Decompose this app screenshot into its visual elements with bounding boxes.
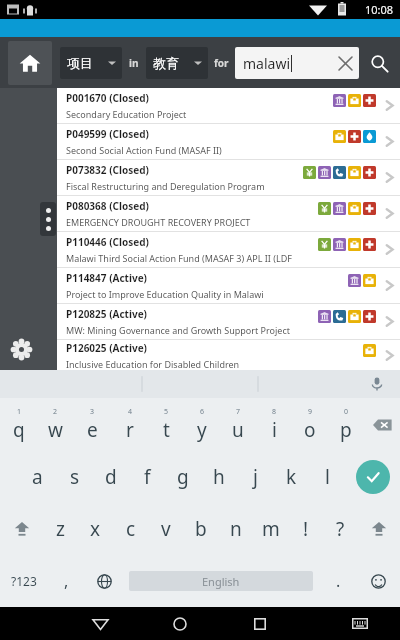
staticText: Malawi Third Social Action Fund (MASAF 3…	[66, 252, 318, 264]
button[interactable]: P001670 (Closed)	[57, 88, 400, 123]
staticText: j	[253, 464, 258, 490]
staticText: 5	[164, 407, 169, 417]
button[interactable]: v	[148, 503, 183, 555]
button[interactable]: m	[253, 503, 288, 555]
button[interactable]: P073832 (Closed)	[57, 160, 400, 195]
button[interactable]: h	[201, 451, 237, 503]
button[interactable]: d	[93, 451, 129, 503]
button[interactable]: Drag handle	[40, 202, 56, 236]
button[interactable]: 2	[37, 398, 74, 451]
staticText: r	[126, 417, 134, 443]
button[interactable]: 项目	[60, 47, 122, 79]
staticText: P080368 (Closed)	[66, 199, 149, 213]
staticText: English	[202, 574, 240, 589]
staticText: q	[13, 417, 25, 443]
staticText: Second Social Action Fund (MASAF II)	[66, 144, 222, 156]
staticText: 0	[344, 407, 349, 417]
button[interactable]: 0	[328, 398, 364, 451]
staticText: EMERGENCY DROUGHT RECOVERY PROJECT	[66, 216, 251, 228]
staticText: u	[232, 417, 244, 443]
button[interactable]: 4	[111, 398, 148, 451]
button[interactable]: b	[183, 503, 218, 555]
button[interactable]: 3	[74, 398, 111, 451]
button[interactable]: Search	[362, 46, 396, 80]
button[interactable]: .	[319, 555, 357, 607]
button[interactable]: Clear	[331, 49, 359, 77]
staticText: Project to Improve Education Quality in …	[66, 288, 264, 300]
staticText: g	[177, 464, 189, 490]
staticText: p	[340, 417, 352, 443]
button[interactable]: Language	[85, 555, 123, 607]
button[interactable]: 教育	[146, 47, 208, 79]
button[interactable]: l	[309, 451, 345, 503]
staticText: w	[48, 417, 63, 443]
button[interactable]: Enter	[356, 460, 390, 494]
button[interactable]: 6	[184, 398, 220, 451]
staticText: 4	[128, 407, 133, 417]
button[interactable]: 5	[148, 398, 184, 451]
button[interactable]: English	[129, 571, 313, 591]
staticText: ,	[64, 570, 69, 592]
staticText: in	[129, 56, 139, 70]
staticText: Fiscal Restructuring and Deregulation Pr…	[66, 180, 303, 192]
button[interactable]: P049599 (Closed)	[57, 124, 400, 159]
button[interactable]: c	[113, 503, 148, 555]
button[interactable]: Shift	[0, 503, 43, 555]
staticText: h	[213, 464, 225, 490]
staticText: b	[195, 516, 207, 542]
staticText: s	[70, 464, 80, 490]
staticText: 8	[272, 407, 277, 417]
staticText: 10:08	[365, 2, 394, 17]
staticText: !	[303, 516, 309, 542]
staticText: a	[32, 464, 43, 490]
button[interactable]: j	[237, 451, 273, 503]
button[interactable]: ?	[323, 503, 358, 555]
button[interactable]: x	[78, 503, 113, 555]
staticText: l	[325, 464, 330, 490]
button[interactable]: n	[218, 503, 253, 555]
button[interactable]: P110446 (Closed)	[57, 232, 400, 267]
button[interactable]: z	[43, 503, 78, 555]
staticText: y	[197, 417, 207, 443]
button[interactable]: Settings	[6, 334, 36, 364]
button[interactable]: Switch keyboard	[335, 607, 385, 640]
button[interactable]: Shift	[358, 503, 400, 555]
button[interactable]: P126025 (Active)	[57, 340, 400, 370]
button[interactable]: P120825 (Active)	[57, 304, 400, 339]
button[interactable]: ,	[47, 555, 85, 607]
staticText: t	[163, 417, 170, 443]
staticText: for	[214, 56, 229, 70]
button[interactable]: Recents	[235, 607, 285, 640]
staticText: P049599 (Closed)	[66, 127, 149, 141]
button[interactable]: 1	[0, 398, 37, 451]
button[interactable]: malawi	[235, 47, 359, 79]
button[interactable]: Voice input	[364, 371, 390, 397]
button[interactable]: 7	[220, 398, 256, 451]
staticText: MW: Mining Governance and Growth Support…	[66, 324, 290, 336]
button[interactable]: 8	[256, 398, 292, 451]
button[interactable]: f	[129, 451, 165, 503]
button[interactable]: Home	[155, 607, 205, 640]
button[interactable]: !	[288, 503, 323, 555]
button[interactable]: g	[165, 451, 201, 503]
staticText: P001670 (Closed)	[66, 91, 149, 105]
button[interactable]: ?123	[0, 555, 47, 607]
button[interactable]: Backspace	[364, 398, 400, 451]
button[interactable]: k	[273, 451, 309, 503]
staticText: P126025 (Active)	[66, 341, 147, 355]
staticText: P120825 (Active)	[66, 307, 147, 321]
button[interactable]: s	[56, 451, 93, 503]
staticText: 教育	[153, 55, 179, 71]
button[interactable]: P080368 (Closed)	[57, 196, 400, 231]
staticText: x	[90, 516, 101, 542]
staticText: 项目	[67, 55, 93, 71]
button[interactable]: Back	[75, 607, 125, 640]
staticText: n	[230, 516, 242, 542]
staticText: i	[272, 417, 277, 443]
button[interactable]: Emoji	[357, 555, 400, 607]
button[interactable]: P114847 (Active)	[57, 268, 400, 303]
button[interactable]: Home	[8, 41, 52, 85]
button[interactable]: a	[19, 451, 56, 503]
button[interactable]: 9	[292, 398, 328, 451]
staticText: 3	[90, 407, 95, 417]
